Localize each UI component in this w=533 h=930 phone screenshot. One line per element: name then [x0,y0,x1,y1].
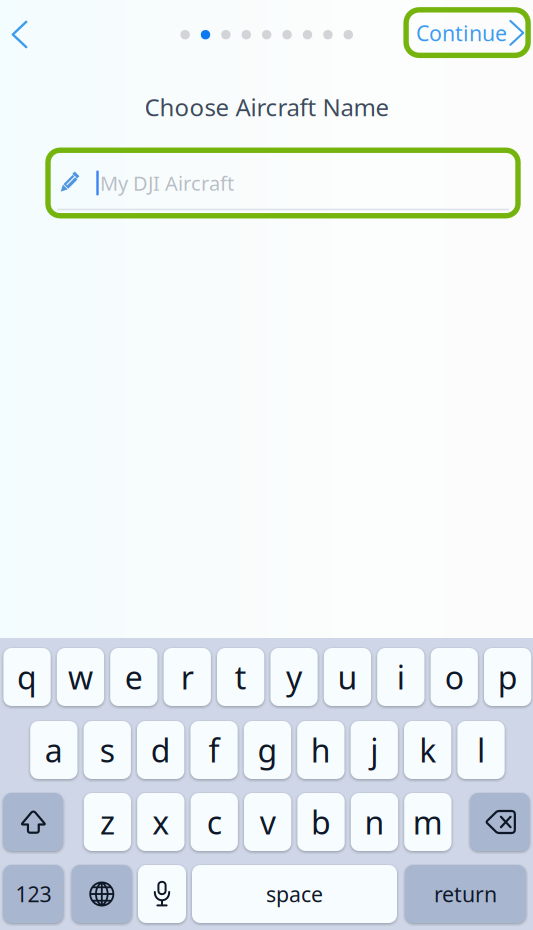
staticText: c [207,801,222,843]
button[interactable]: g [244,721,291,779]
button[interactable]: Back [1,12,45,56]
staticText: x [152,801,169,843]
staticText: z [100,801,115,843]
staticText: j [370,729,378,771]
staticText: e [125,656,143,698]
button[interactable]: r [164,648,211,706]
staticText: u [337,656,357,698]
button[interactable]: e [110,648,157,706]
button[interactable]: space [192,865,397,923]
button[interactable]: w [57,648,104,706]
button[interactable]: l [457,721,505,779]
staticText: h [311,729,331,771]
button[interactable]: k [404,721,451,779]
button[interactable]: a [30,721,77,779]
button[interactable]: n [351,793,398,851]
button[interactable]: m [404,793,451,851]
staticText: b [311,801,331,843]
button[interactable]: i [377,648,424,706]
button[interactable]: u [324,648,371,706]
button[interactable]: p [484,648,531,706]
staticText: q [17,656,37,698]
staticText: w [68,656,93,698]
button[interactable]: Dictate [138,865,186,923]
staticText: o [445,656,464,698]
staticText: v [260,801,276,843]
staticText: n [364,801,384,843]
staticText: k [419,729,436,771]
textField[interactable]: My DJI Aircraft [51,153,515,213]
button[interactable]: j [351,721,398,779]
button[interactable]: Next keyboard [72,865,132,923]
button[interactable]: return [405,865,526,923]
button[interactable]: h [297,721,344,779]
button[interactable]: s [84,721,131,779]
button[interactable]: y [270,648,318,706]
button[interactable]: v [244,793,291,851]
staticText: My DJI Aircraft [100,170,234,196]
button[interactable]: d [137,721,184,779]
button[interactable]: x [137,793,184,851]
staticText: space [266,880,323,908]
staticText: s [100,729,115,771]
staticText: t [235,656,247,698]
button[interactable]: Shift [3,793,63,851]
button[interactable]: t [217,648,264,706]
button[interactable]: Continue [406,10,528,55]
staticText: 123 [15,880,51,908]
staticText: r [181,656,194,698]
staticText: f [208,729,219,771]
button[interactable]: o [431,648,478,706]
staticText: y [286,656,302,698]
staticText: d [151,729,171,771]
button[interactable]: q [3,648,51,706]
staticText: l [477,729,485,771]
staticText: p [498,656,518,698]
staticText: a [45,729,63,771]
button[interactable]: 123 [3,865,63,923]
staticText: g [257,729,277,771]
button[interactable]: f [190,721,238,779]
staticText: return [434,880,497,908]
button[interactable]: Aircraft name [51,153,515,213]
button[interactable]: c [191,793,238,851]
staticText: m [413,801,443,843]
button[interactable]: z [84,793,131,851]
staticText: Continue [416,19,507,47]
button[interactable]: b [297,793,345,851]
button[interactable]: Delete [470,793,529,851]
staticText: i [397,656,405,698]
staticText: Choose Aircraft Name [144,91,389,123]
